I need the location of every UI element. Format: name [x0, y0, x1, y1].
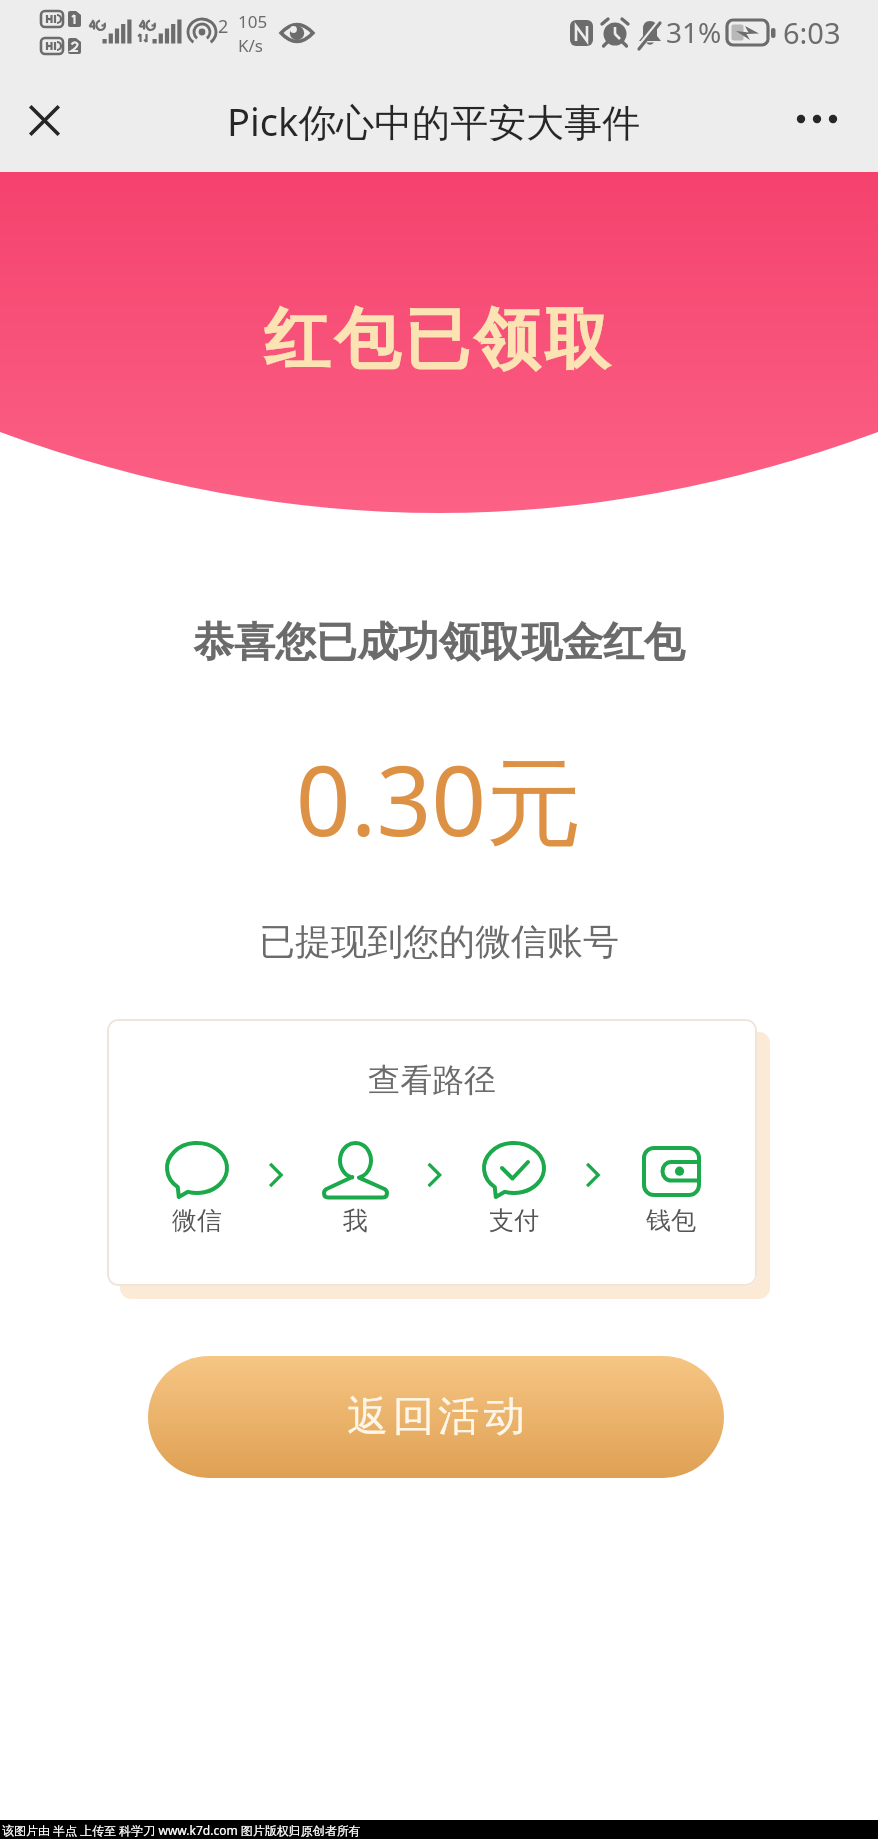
staticText: K/s — [238, 34, 263, 57]
staticText: 我 — [343, 1205, 368, 1236]
staticText: 恭喜您已成功领取现金红包 — [0, 617, 878, 669]
staticText: 0.30元 — [0, 733, 878, 864]
staticText: 红包已领取 — [0, 298, 878, 381]
staticText: 返回活动 — [345, 1391, 527, 1443]
staticText: 微信 — [172, 1205, 222, 1236]
staticText: 该图片由 半点 上传至 科学刀 www.k7d.com 图片版权归原创者所有 — [2, 1822, 361, 1838]
staticText: Pick你心中的平安大事件 — [227, 95, 641, 147]
staticText: 查看路径 — [107, 1060, 757, 1100]
staticText: 2 — [218, 14, 229, 39]
staticText: 105 — [238, 10, 268, 33]
button[interactable]: More options — [807, 92, 865, 150]
staticText: 6:03 — [783, 13, 841, 52]
staticText: 钱包 — [646, 1205, 696, 1236]
button[interactable]: Close — [16, 92, 74, 150]
button[interactable]: 返回活动 — [148, 1356, 724, 1478]
staticText: 已提现到您的微信账号 — [0, 919, 878, 964]
staticText: 31% — [666, 13, 722, 51]
staticText: 支付 — [489, 1205, 539, 1236]
